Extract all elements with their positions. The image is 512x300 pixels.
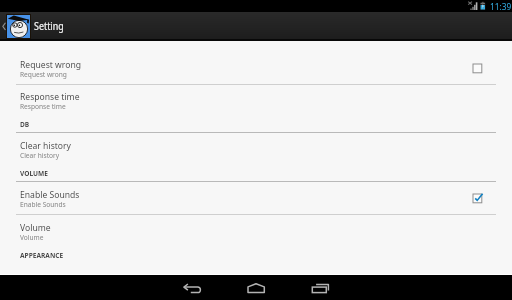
button[interactable]: Checked (465, 188, 490, 208)
staticText: Response time (20, 91, 80, 103)
button[interactable]: Volume (0, 215, 512, 247)
other: App icon (6, 14, 31, 39)
button[interactable]: Unchecked (465, 58, 490, 78)
staticText: Setting (34, 18, 64, 33)
staticText: Clear history (20, 140, 71, 152)
staticText: VOLUME (20, 169, 48, 178)
staticText: Volume (20, 222, 51, 234)
button[interactable]: Recent apps (300, 275, 340, 300)
staticText: Enable Sounds (20, 189, 80, 201)
button[interactable]: Navigate up (0, 12, 512, 41)
staticText: DB (20, 120, 30, 129)
button[interactable]: Home (236, 275, 276, 300)
button[interactable]: Request wrong (0, 51, 512, 84)
other: Signal and battery status (466, 0, 512, 12)
button[interactable]: Enable Sounds (0, 182, 512, 214)
button[interactable]: Response time (0, 85, 512, 117)
staticText: Request wrong (20, 59, 82, 71)
staticText: APPEARANCE (20, 251, 64, 260)
staticText: Enable Sounds (20, 200, 66, 209)
staticText: Response time (20, 102, 66, 111)
staticText: Clear history (20, 151, 60, 160)
button[interactable]: Clear history (0, 133, 512, 165)
staticText: Volume (20, 233, 44, 242)
staticText: Request wrong (20, 70, 67, 79)
staticText: 11:39 (490, 1, 512, 12)
button[interactable]: Back (172, 275, 212, 300)
